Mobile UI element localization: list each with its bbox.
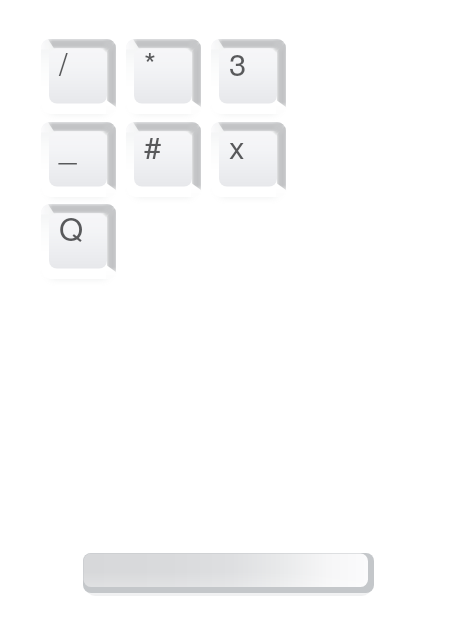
staticText: / — [59, 40, 68, 84]
button[interactable]: Space — [83, 553, 374, 593]
button[interactable]: 3 — [211, 39, 286, 114]
staticText: x — [229, 123, 245, 167]
staticText: 3 — [229, 40, 247, 84]
button[interactable]: # — [126, 122, 201, 197]
staticText: # — [144, 123, 162, 167]
button[interactable]: * — [126, 39, 201, 114]
staticText: _ — [59, 123, 77, 167]
staticText: * — [144, 40, 157, 84]
button[interactable]: _ — [41, 122, 116, 197]
button[interactable]: / — [41, 39, 116, 114]
button[interactable]: Q — [41, 204, 116, 279]
button[interactable]: x — [211, 122, 286, 197]
staticText: Q — [59, 205, 84, 249]
